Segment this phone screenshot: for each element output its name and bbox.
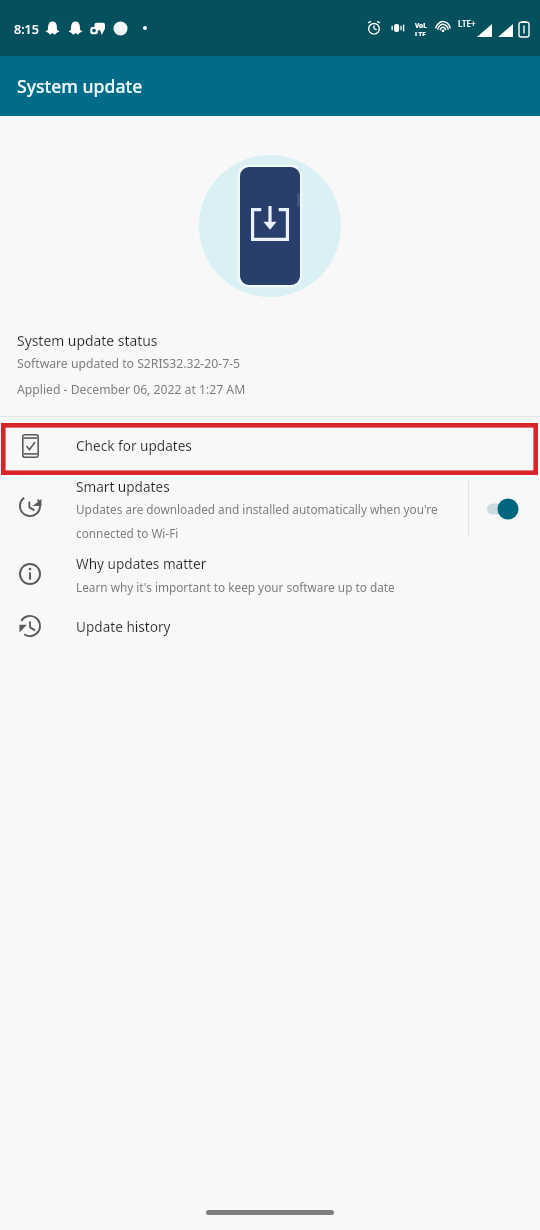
staticText: VoL: [415, 21, 427, 30]
button[interactable]: Check for updates: [0, 417, 540, 474]
staticText: Check for updates: [76, 436, 192, 455]
button[interactable]: Update history: [0, 602, 540, 650]
button[interactable]: Smart updates toggle: [469, 474, 540, 542]
staticText: 8:15: [14, 21, 39, 38]
staticText: Applied - December 06, 2022 at 1:27 AM: [17, 381, 246, 398]
staticText: Updates are downloaded and installed aut…: [76, 501, 454, 541]
staticText: LTE+: [458, 18, 476, 29]
staticText: Software updated to S2RIS32.32-20-7-5: [17, 355, 241, 372]
staticText: System update: [17, 74, 143, 98]
staticText: Update history: [76, 617, 171, 636]
staticText: LTE: [415, 30, 426, 36]
staticText: Learn why it's important to keep your so…: [76, 579, 395, 595]
staticText: Smart updates: [76, 477, 170, 496]
staticText: System update status: [17, 331, 158, 350]
button[interactable]: Why updates matter: [0, 548, 540, 600]
staticText: Why updates matter: [76, 554, 207, 573]
button[interactable]: Smart updates: [0, 474, 468, 542]
